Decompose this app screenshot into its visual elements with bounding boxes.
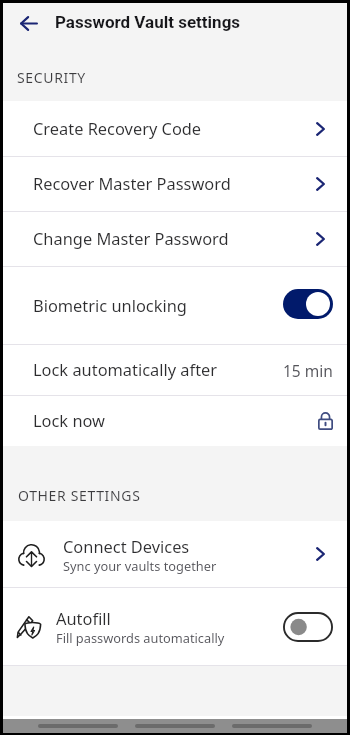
staticText: Create Recovery Code	[33, 117, 202, 139]
staticText: OTHER SETTINGS	[18, 486, 141, 505]
button[interactable]: Create Recovery Code	[3, 101, 347, 156]
staticText: Autofill	[56, 607, 111, 629]
staticText: Change Master Password	[33, 227, 229, 249]
button[interactable]: Lock automatically after	[3, 345, 347, 395]
button[interactable]: Recover Master Password	[3, 157, 347, 211]
staticText: Connect Devices	[63, 535, 190, 557]
button[interactable]: Change Master Password	[3, 212, 347, 266]
staticText: Biometric unlocking	[33, 294, 187, 316]
staticText: SECURITY	[17, 68, 86, 87]
button[interactable]: Biometric unlocking, on	[283, 289, 333, 319]
staticText: Password Vault settings	[55, 12, 241, 32]
button[interactable]: Autofill, off	[283, 612, 333, 642]
button[interactable]: Connect Devices	[3, 521, 347, 587]
button[interactable]: Biometric unlocking	[3, 267, 347, 344]
button[interactable]: Lock now	[3, 396, 347, 446]
button[interactable]: Navigate back	[10, 4, 48, 42]
staticText: Fill passwords automatically	[56, 629, 225, 646]
staticText: Lock automatically after	[33, 358, 218, 380]
staticText: Lock now	[33, 409, 105, 431]
staticText: Recover Master Password	[33, 172, 231, 194]
staticText: Sync your vaults together	[63, 557, 217, 574]
button[interactable]: Autofill	[3, 588, 347, 665]
staticText: 15 min	[283, 360, 333, 381]
